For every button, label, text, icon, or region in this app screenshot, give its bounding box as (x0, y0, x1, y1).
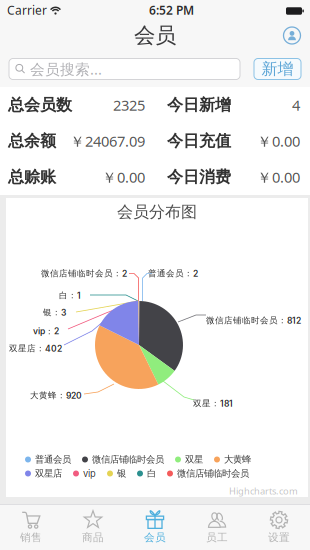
staticText: 会员 (134, 22, 176, 49)
staticText: 新增 (261, 59, 293, 79)
staticText: 白：1 (59, 290, 81, 301)
button[interactable]: 销售 (0, 504, 62, 550)
staticText: 会员分布图 (117, 202, 197, 222)
button[interactable]: 大黄蜂 (214, 454, 251, 465)
staticText: 销售 (20, 531, 42, 544)
staticText: Highcharts.com (229, 485, 298, 497)
staticText: 总赊账 (8, 167, 56, 187)
button[interactable]: 银 (107, 468, 126, 479)
staticText: 总余额 (8, 131, 56, 151)
staticText: vip：2 (33, 326, 59, 337)
staticText: ￥0.00 (257, 167, 300, 187)
staticText: 微信店铺临时会员 (177, 468, 249, 479)
staticText: 双星店 (35, 468, 62, 479)
button[interactable]: 白 (137, 468, 156, 479)
staticText: 4 (292, 95, 300, 115)
button[interactable]: 商品 (62, 504, 124, 550)
button[interactable]: 普通会员 (25, 454, 71, 465)
staticText: vip (83, 468, 96, 479)
staticText: 微信店铺临时会员 (92, 454, 164, 465)
staticText: 普通会员：2 (148, 268, 198, 279)
staticText: 双星店：402 (9, 343, 62, 354)
staticText: ￥0.00 (257, 131, 300, 151)
staticText: 银 (117, 468, 126, 479)
staticText: 总会员数 (8, 95, 72, 115)
staticText: ￥0.00 (102, 167, 145, 187)
staticText: 双星：181 (193, 398, 233, 409)
staticText: 银：3 (43, 307, 66, 318)
staticText: 普通会员 (35, 454, 71, 465)
staticText: 会员搜索... (30, 59, 102, 79)
button[interactable]: 双星 (175, 454, 203, 465)
staticText: 大黄蜂 (224, 454, 251, 465)
staticText: 双星 (185, 454, 203, 465)
button[interactable]: 员工 (186, 504, 248, 550)
staticText: 会员 (144, 531, 166, 544)
staticText: 微信店铺临时会员：812 (206, 315, 301, 326)
staticText: 员工 (206, 531, 228, 544)
button[interactable]: vip (73, 468, 96, 479)
button[interactable]: 设置 (248, 504, 310, 550)
staticText: 微信店铺临时会员：2 (41, 268, 127, 279)
button[interactable]: 双星店 (25, 468, 62, 479)
staticText: 2325 (113, 95, 145, 115)
staticText: 设置 (268, 531, 290, 544)
staticText: 大黄蜂：920 (30, 390, 82, 401)
button[interactable]: 我的账户 (274, 20, 310, 51)
button[interactable]: 会员 (124, 504, 186, 550)
staticText: ￥24067.09 (70, 131, 145, 151)
button[interactable]: 新增 (254, 58, 301, 79)
staticText: 6:52 PM (149, 2, 194, 18)
staticText: 白 (147, 468, 156, 479)
staticText: 今日充值 (167, 131, 231, 151)
staticText: 今日消费 (167, 167, 231, 187)
button[interactable]: 微信店铺临时会员 (82, 454, 164, 465)
button[interactable]: 微信店铺临时会员 (167, 468, 249, 479)
staticText: 今日新增 (167, 95, 231, 115)
staticText: Carrier (7, 2, 47, 18)
staticText: 商品 (82, 531, 104, 544)
